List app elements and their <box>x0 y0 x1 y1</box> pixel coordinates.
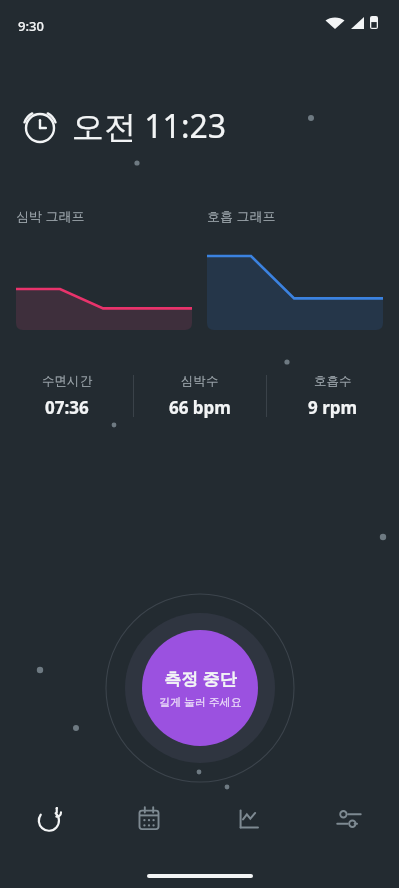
staticText: 9:30 <box>18 17 44 35</box>
button[interactable]: Settings <box>299 790 399 848</box>
staticText: 9 rpm <box>308 396 358 419</box>
button[interactable]: Statistics <box>199 790 299 848</box>
button[interactable]: 호흡수 <box>267 373 399 419</box>
staticText: 오전 11:23 <box>72 104 227 148</box>
button[interactable]: Sleep <box>0 790 99 848</box>
staticText: 수면시간 <box>42 373 92 389</box>
button[interactable]: Calendar <box>99 790 199 848</box>
staticText: 호흡 그래프 <box>207 207 276 225</box>
staticText: 심박 그래프 <box>16 207 85 225</box>
staticText: 길게 눌러 주세요 <box>159 694 242 709</box>
button[interactable]: 측정 중단 <box>142 630 258 746</box>
staticText: 측정 중단 <box>164 667 237 690</box>
staticText: 07:36 <box>45 396 89 419</box>
staticText: 호흡수 <box>314 373 352 389</box>
staticText: 66 bpm <box>169 396 231 419</box>
button[interactable]: 심박수 <box>134 373 266 419</box>
button[interactable]: 수면시간 <box>0 373 133 419</box>
staticText: 심박수 <box>181 373 219 389</box>
